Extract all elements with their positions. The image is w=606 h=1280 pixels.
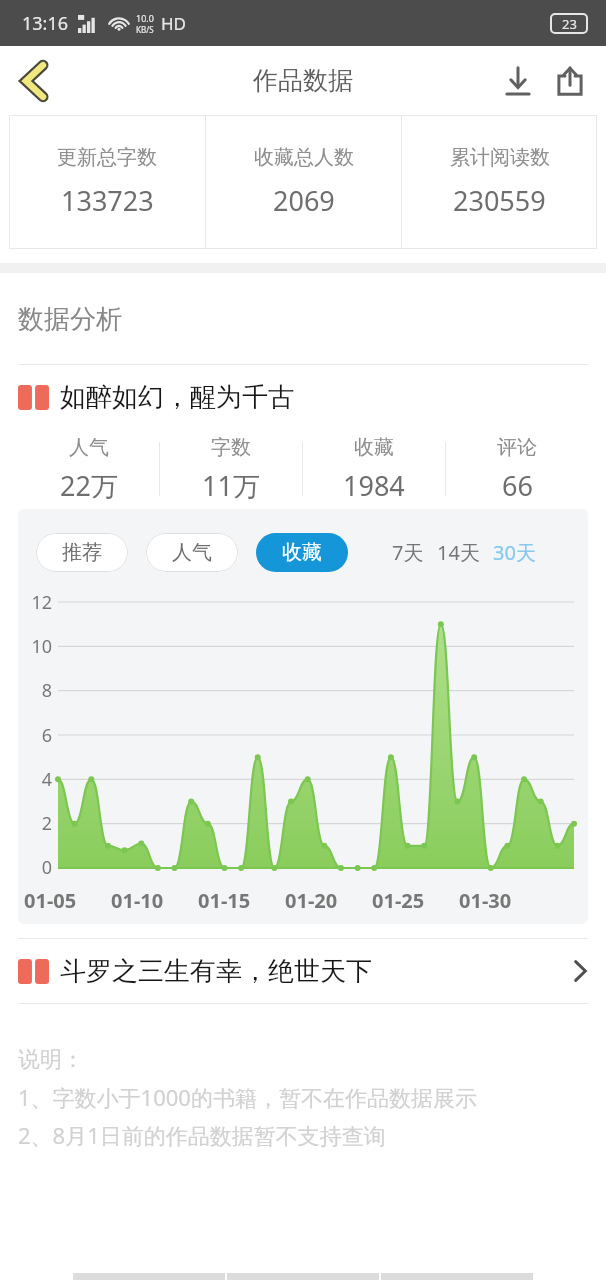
button[interactable]: 斗罗之三生有幸，绝世天下 (0, 939, 606, 1003)
staticText: 2 (41, 811, 52, 836)
staticText: 作品数据 (253, 65, 353, 96)
staticText: 230559 (453, 182, 546, 219)
staticText: 收藏 (282, 540, 322, 565)
staticText: 6 (41, 723, 52, 748)
staticText: 斗罗之三生有幸，绝世天下 (60, 955, 372, 988)
staticText: 22万 (60, 467, 118, 504)
staticText: 评论 (497, 435, 537, 460)
staticText: 1、字数小于1000的书籍，暂不在作品数据展示 (18, 1082, 477, 1112)
button[interactable]: 收藏 (303, 429, 445, 509)
staticText: 01-20 (285, 887, 338, 914)
staticText: 01-05 (24, 887, 77, 914)
button[interactable]: 7天 (392, 539, 424, 566)
staticText: 累计阅读数 (450, 145, 550, 170)
button[interactable]: 收藏 (256, 533, 348, 572)
button[interactable]: Download (492, 55, 544, 107)
staticText: 10 (31, 634, 52, 659)
button[interactable]: 收藏总人数 (206, 115, 401, 249)
staticText: 13:16 (22, 11, 69, 36)
staticText: 01-15 (198, 887, 251, 914)
staticText: 10.0 (136, 12, 154, 24)
button[interactable]: 14天 (437, 539, 480, 566)
staticText: 4 (41, 767, 52, 792)
button[interactable]: Share (544, 55, 596, 107)
staticText: 8 (41, 678, 52, 703)
staticText: 收藏 (354, 435, 394, 460)
button[interactable]: 人气 (18, 429, 159, 509)
staticText: 0 (41, 855, 52, 880)
staticText: 01-25 (372, 887, 425, 914)
staticText: 推荐 (62, 540, 102, 565)
button[interactable]: 累计阅读数 (402, 115, 597, 249)
staticText: 133723 (61, 182, 154, 219)
button[interactable]: 30天 (493, 539, 536, 566)
staticText: 数据分析 (18, 303, 122, 336)
staticText: 人气 (69, 435, 109, 460)
button[interactable]: 评论 (446, 429, 588, 509)
staticText: 字数 (211, 435, 251, 460)
staticText: 2069 (273, 182, 335, 219)
staticText: 更新总字数 (57, 145, 157, 170)
staticText: 01-30 (459, 887, 512, 914)
staticText: 如醉如幻，醒为千古 (60, 381, 294, 414)
staticText: 66 (502, 467, 533, 504)
staticText: 7天 (392, 539, 424, 566)
staticText: HD (161, 12, 187, 35)
button[interactable]: 更新总字数 (9, 115, 205, 249)
staticText: 30天 (493, 539, 536, 566)
staticText: 人气 (172, 540, 212, 565)
button[interactable]: 推荐 (36, 533, 128, 572)
staticText: 收藏总人数 (254, 145, 354, 170)
staticText: 23 (562, 15, 577, 33)
staticText: 2、8月1日前的作品数据暂不支持查询 (18, 1120, 386, 1150)
button[interactable]: Back (6, 53, 62, 109)
staticText: 说明： (18, 1046, 84, 1074)
staticText: 11万 (202, 467, 260, 504)
staticText: 01-10 (111, 887, 164, 914)
staticText: 14天 (437, 539, 480, 566)
staticText: 12 (31, 590, 52, 615)
staticText: KB/S (136, 24, 154, 35)
staticText: 1984 (343, 467, 405, 504)
button[interactable]: 字数 (160, 429, 302, 509)
button[interactable]: 人气 (146, 533, 238, 572)
button[interactable]: 如醉如幻，醒为千古 (0, 365, 606, 429)
